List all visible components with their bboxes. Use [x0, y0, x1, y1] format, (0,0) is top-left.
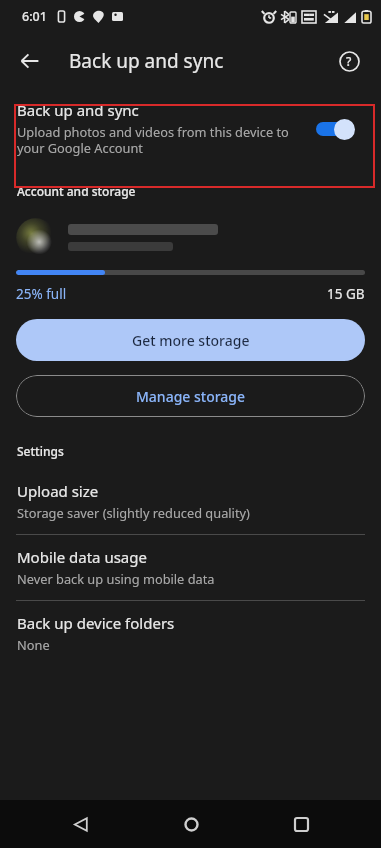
staticText: 25% full — [16, 285, 67, 303]
staticText: Get more storage — [132, 331, 250, 350]
staticText: 6:01 — [22, 8, 47, 25]
button[interactable]: Mobile data usage — [0, 535, 381, 600]
button[interactable]: Back up and sync toggle — [312, 114, 364, 144]
button[interactable]: Recent apps — [270, 800, 332, 848]
staticText: Storage saver (slightly reduced quality) — [17, 504, 250, 521]
button[interactable]: Manage storage — [16, 375, 365, 417]
button[interactable]: Back up and sync — [0, 90, 381, 169]
staticText: Back up and sync — [69, 48, 224, 74]
button[interactable]: Back — [8, 39, 52, 83]
staticText: ? — [346, 53, 352, 69]
button[interactable]: Back — [49, 800, 111, 848]
staticText: Account and storage — [17, 183, 136, 199]
staticText: Settings — [17, 443, 64, 459]
staticText: Upload size — [17, 481, 99, 501]
button[interactable]: Get more storage — [16, 319, 365, 361]
staticText: Back up and sync — [17, 100, 139, 120]
staticText: Mobile data usage — [17, 547, 147, 567]
button[interactable]: Home — [160, 800, 222, 848]
button[interactable]: Help — [329, 41, 369, 81]
staticText: Manage storage — [136, 387, 246, 406]
button[interactable]: Upload size — [0, 469, 381, 534]
staticText: Never back up using mobile data — [17, 570, 215, 587]
button[interactable] — [0, 199, 381, 270]
staticText: 15 GB — [327, 285, 365, 303]
staticText: Back up device folders — [17, 613, 175, 633]
button[interactable]: Back up device folders — [0, 601, 381, 666]
staticText: None — [17, 636, 50, 653]
staticText: Upload photos and videos from this devic… — [17, 123, 302, 157]
